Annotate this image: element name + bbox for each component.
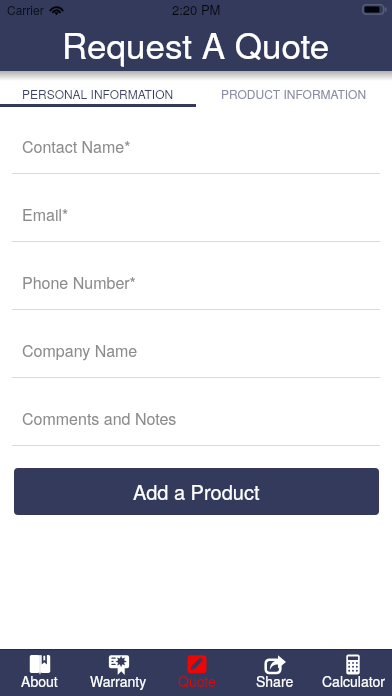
staticText: About <box>21 671 58 691</box>
staticText: Request A Quote <box>62 19 330 69</box>
button[interactable]: Warranty <box>79 650 158 696</box>
staticText: Share <box>256 671 294 691</box>
button[interactable]: Add a Product <box>14 468 379 515</box>
staticText: Email* <box>22 203 69 225</box>
button[interactable]: PERSONAL INFORMATION <box>0 71 196 107</box>
staticText: Carrier <box>7 1 44 18</box>
staticText: Company Name <box>22 339 138 361</box>
staticText: PERSONAL INFORMATION <box>22 85 174 102</box>
staticText: Add a Product <box>133 477 260 506</box>
staticText: Quote <box>178 671 216 691</box>
staticText: Warranty <box>90 671 147 691</box>
button[interactable]: PRODUCT INFORMATION <box>196 71 392 107</box>
button[interactable]: Calculator <box>314 650 392 696</box>
staticText: PRODUCT INFORMATION <box>221 85 367 102</box>
staticText: Calculator <box>322 671 385 691</box>
button[interactable]: About <box>0 650 79 696</box>
staticText: Comments and Notes <box>22 407 177 429</box>
staticText: Contact Name* <box>22 135 131 157</box>
button[interactable]: Quote <box>158 650 236 696</box>
staticText: Phone Number* <box>22 271 136 293</box>
button[interactable]: Share <box>236 650 314 696</box>
staticText: 2:20 PM <box>172 0 221 19</box>
